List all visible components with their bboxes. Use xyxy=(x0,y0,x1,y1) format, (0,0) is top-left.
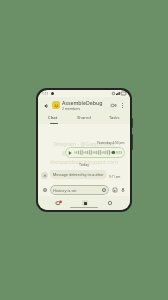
staticText: thespandroid.blogspot.com xyxy=(50,158,118,165)
button[interactable]: Chat xyxy=(38,113,68,123)
staticText: Today xyxy=(79,162,89,167)
staticText: Yesterday 4:50 pm xyxy=(97,141,125,145)
button[interactable]: Back xyxy=(105,198,114,207)
button[interactable]: Home xyxy=(80,198,89,207)
button[interactable]: Voice message xyxy=(119,186,127,194)
button[interactable]: Video call xyxy=(109,101,118,110)
staticText: 2 members xyxy=(62,106,81,111)
button[interactable]: History is on xyxy=(50,185,109,195)
staticText: Telegram - @GappsLeaks xyxy=(53,140,115,147)
staticText: @Assembledebug xyxy=(62,149,106,156)
staticText: 1:11 xyxy=(42,92,49,96)
button[interactable]: More options xyxy=(118,101,127,110)
button[interactable]: 0:13 xyxy=(65,147,125,158)
staticText: AssembleDebug xyxy=(62,99,103,106)
button[interactable]: Shared xyxy=(68,113,99,123)
button[interactable]: Gallery xyxy=(111,186,119,194)
button[interactable]: Message deleted by its author xyxy=(50,170,107,179)
button[interactable]: Tasks xyxy=(99,113,130,123)
staticText: Shared xyxy=(77,115,91,121)
staticText: 0:13 xyxy=(116,151,122,155)
button[interactable]: Attach xyxy=(41,186,49,194)
button[interactable]: AssembleDebug xyxy=(62,99,109,111)
staticText: Tasks xyxy=(109,115,120,121)
button[interactable]: Recents xyxy=(54,198,63,207)
staticText: Message deleted by its author xyxy=(53,172,104,177)
staticText: 9:11 am xyxy=(109,175,121,179)
staticText: History is on xyxy=(53,188,102,193)
staticText: Chat xyxy=(48,115,58,121)
button[interactable]: Back xyxy=(41,101,50,110)
